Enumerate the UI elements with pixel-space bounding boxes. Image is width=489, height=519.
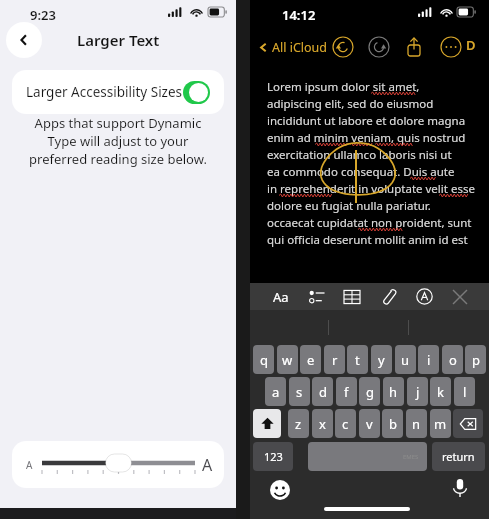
button[interactable]: h	[383, 377, 404, 406]
staticText: c	[342, 415, 349, 433]
staticText: m	[434, 415, 447, 433]
button[interactable]: q	[253, 345, 274, 374]
staticText: 123	[264, 449, 283, 464]
button[interactable]: r	[324, 345, 345, 374]
staticText: h	[389, 383, 398, 401]
staticText: dolore eu fugiat nulla pariatur. Excepte…	[267, 198, 475, 215]
button[interactable]: b	[382, 409, 403, 438]
button[interactable]: v	[359, 409, 380, 438]
staticText: A	[202, 454, 213, 476]
button[interactable]: z	[288, 409, 309, 438]
staticText: i	[427, 351, 431, 369]
button[interactable]: Shift	[253, 409, 281, 438]
button[interactable]: Backspace	[453, 409, 483, 438]
staticText: q	[260, 351, 268, 369]
button[interactable]: u	[395, 345, 416, 374]
button[interactable]: Checklist	[307, 287, 327, 307]
staticText: Larger Accessibility Sizes	[26, 83, 183, 101]
staticText: b	[389, 415, 397, 433]
button[interactable]: e	[300, 345, 321, 374]
button[interactable]: Markup	[414, 286, 435, 307]
staticText: o	[449, 351, 457, 369]
staticText: ea commodo consequat. Duis aute irure do…	[267, 164, 475, 181]
staticText: exercitation ullamco laboris nisi ut ali…	[267, 147, 475, 164]
staticText: f	[344, 383, 349, 401]
staticText: 14:12	[282, 6, 316, 24]
staticText: Done	[466, 36, 479, 58]
staticText: qui officia deserunt mollit anim id est …	[267, 232, 475, 249]
staticText: Apps that support Dynamic Type will adju…	[20, 114, 216, 168]
staticText: e	[307, 351, 315, 369]
staticText: Lorem ipsum dolor sit amet, consectetur	[267, 79, 475, 96]
staticText: Aa	[273, 288, 289, 306]
button[interactable]: t	[347, 345, 368, 374]
button[interactable]: s	[289, 377, 310, 406]
button[interactable]: Share	[402, 35, 426, 59]
button[interactable]: n	[406, 409, 427, 438]
button[interactable]: Larger Accessibility Sizes	[12, 70, 224, 114]
staticText: p	[472, 351, 480, 369]
staticText: enim ad minim veniam, quis nostrud	[267, 130, 466, 146]
button[interactable]: l	[454, 377, 475, 406]
button[interactable]: c	[335, 409, 356, 438]
button[interactable]: All iCloud	[256, 39, 330, 56]
button[interactable]: Close	[451, 288, 469, 306]
button[interactable]: d	[312, 377, 333, 406]
staticText: v	[366, 415, 373, 433]
button[interactable]: Space	[308, 442, 427, 471]
staticText: A	[26, 458, 33, 472]
button[interactable]: 123	[253, 442, 293, 471]
staticText: r	[332, 351, 338, 369]
staticText: z	[295, 415, 302, 433]
staticText: l	[463, 383, 467, 401]
button[interactable]: w	[277, 345, 298, 374]
button[interactable]: return	[432, 442, 485, 471]
staticText: u	[401, 351, 410, 369]
button[interactable]: Attach	[378, 287, 398, 307]
staticText: y	[378, 351, 385, 369]
staticText: Larger Text	[77, 30, 160, 50]
button[interactable]: Redo	[366, 34, 392, 60]
button[interactable]: Table	[342, 287, 362, 307]
staticText: 9:23	[30, 6, 56, 24]
staticText: w	[282, 351, 293, 369]
staticText: a	[272, 383, 280, 401]
staticText: x	[319, 415, 326, 433]
button[interactable]: m	[430, 409, 451, 438]
staticText: in reprehenderit in voluptate velit esse…	[267, 181, 475, 198]
button[interactable]: Aa	[270, 285, 292, 309]
button[interactable]: Dictation	[450, 478, 470, 498]
button[interactable]: p	[465, 345, 486, 374]
button[interactable]: Undo	[330, 34, 356, 60]
button[interactable]: k	[430, 377, 451, 406]
staticText: k	[437, 383, 444, 401]
staticText: s	[296, 383, 303, 401]
staticText: t	[355, 351, 360, 369]
staticText: return	[442, 449, 475, 464]
button[interactable]: j	[407, 377, 428, 406]
staticText: All iCloud	[272, 39, 328, 56]
staticText: g	[366, 383, 374, 401]
button[interactable]: y	[371, 345, 392, 374]
button[interactable]: Emoji	[270, 480, 290, 500]
staticText: d	[319, 383, 327, 401]
staticText: EMES	[403, 453, 419, 461]
staticText: adipiscing elit, sed do eiusmod tempor	[267, 96, 475, 113]
button[interactable]: a	[265, 377, 286, 406]
staticText: n	[412, 415, 421, 433]
staticText: j	[416, 383, 420, 401]
button[interactable]: x	[312, 409, 333, 438]
button[interactable]: f	[336, 377, 357, 406]
button[interactable]: o	[442, 345, 463, 374]
button[interactable]: Done	[464, 34, 481, 60]
button[interactable]: A	[12, 441, 224, 488]
staticText: occaecat cupidatat non proident, sunt in…	[267, 215, 475, 232]
button[interactable]: More	[438, 34, 464, 60]
button[interactable]: g	[359, 377, 380, 406]
button[interactable]: i	[418, 345, 439, 374]
staticText: incididunt ut labore et dolore magna ali…	[267, 113, 475, 130]
button[interactable]: Back	[6, 22, 42, 58]
